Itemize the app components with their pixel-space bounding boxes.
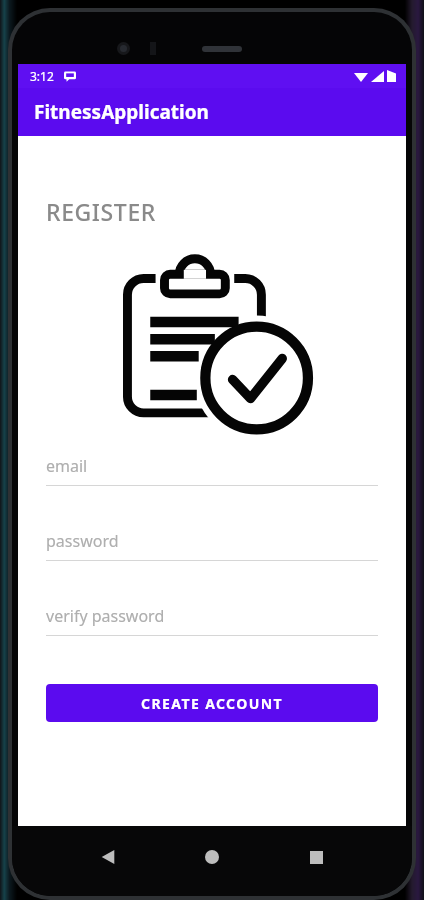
button[interactable]: password xyxy=(46,530,378,561)
staticText: password xyxy=(46,530,119,552)
button[interactable]: Back xyxy=(56,840,160,874)
button[interactable]: Recent apps xyxy=(264,840,368,874)
button[interactable]: Home xyxy=(160,840,264,874)
staticText: FitnessApplication xyxy=(34,99,209,125)
button[interactable]: CREATE ACCOUNT xyxy=(46,684,378,722)
staticText: email xyxy=(46,455,88,477)
staticText: verify password xyxy=(46,605,165,627)
button[interactable]: email xyxy=(46,455,378,486)
staticText: 3:12 xyxy=(30,68,54,84)
staticText: REGISTER xyxy=(46,196,156,227)
staticText: CREATE ACCOUNT xyxy=(141,694,283,713)
button[interactable]: verify password xyxy=(46,605,378,636)
